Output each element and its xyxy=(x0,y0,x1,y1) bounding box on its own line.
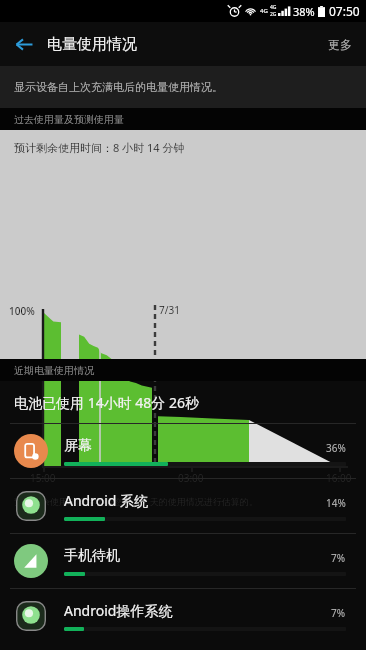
staticText: 屏幕 xyxy=(64,437,326,455)
button[interactable]: Android操作系统 xyxy=(0,588,366,643)
staticText: 03:00 xyxy=(178,471,204,485)
staticText: 7/31 xyxy=(159,303,180,317)
staticText: 38% xyxy=(293,4,315,19)
button[interactable]: 手机待机 xyxy=(0,533,366,588)
staticText: 36% xyxy=(326,441,346,455)
staticText: 过去使用量及预测使用量 xyxy=(14,113,124,126)
staticText: 预计剩余使用时间：8 小时 14 分钟 xyxy=(14,140,185,155)
staticText: 近期电量使用情况 xyxy=(14,364,94,377)
button[interactable]: Back xyxy=(8,28,40,60)
staticText: 显示设备自上次充满电后的电量使用情况。 xyxy=(14,80,223,94)
button[interactable]: 更多 xyxy=(318,29,362,60)
staticText: 100% xyxy=(9,304,35,318)
staticText: 电量使用情况 xyxy=(47,35,137,54)
staticText: 预计剩余使用时间是根据您过去 7 天的使用情况进行估算的。 xyxy=(14,495,258,507)
staticText: 16:00 xyxy=(326,471,352,485)
staticText: 15:00 xyxy=(30,471,56,485)
staticText: 7% xyxy=(331,551,346,565)
staticText: 4G xyxy=(270,4,277,11)
staticText: 14% xyxy=(326,496,346,510)
staticText: Android 系统 xyxy=(64,491,326,510)
staticText: Android操作系统 xyxy=(64,601,331,620)
staticText: 0% xyxy=(22,456,37,470)
button[interactable]: Android 系统 xyxy=(0,478,366,533)
staticText: 7% xyxy=(331,606,346,620)
staticText: 2G xyxy=(270,11,277,18)
staticText: 4G xyxy=(260,7,268,15)
staticText: 更多 xyxy=(328,37,352,52)
staticText: 电池已使用 14小时 48分 26秒 xyxy=(14,393,199,412)
staticText: 手机待机 xyxy=(64,547,331,565)
staticText: 07:50 xyxy=(329,3,360,19)
button[interactable]: 屏幕 xyxy=(0,423,366,478)
